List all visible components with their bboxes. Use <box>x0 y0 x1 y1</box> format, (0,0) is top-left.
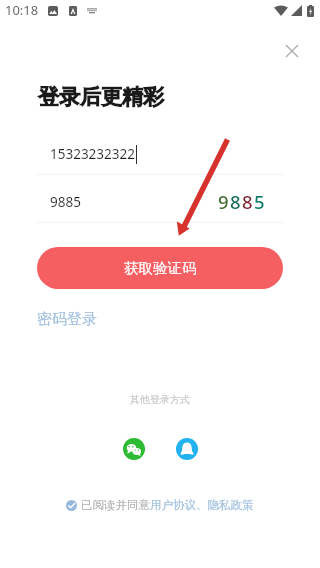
staticText: 5 <box>254 189 265 214</box>
staticText: 已阅读并同意用户协议、隐私政策 <box>81 498 254 512</box>
button[interactable]: 密码登录 <box>37 310 97 329</box>
staticText: 9 <box>218 189 229 214</box>
staticText: 获取验证码 <box>124 259 197 277</box>
staticText: 密码登录 <box>37 310 97 329</box>
button[interactable]: Refresh captcha <box>218 189 265 214</box>
button[interactable]: 获取验证码 <box>37 247 283 289</box>
staticText: 9885 <box>50 193 81 211</box>
button[interactable]: Close <box>278 37 306 65</box>
staticText: 登录后更精彩 <box>38 84 164 110</box>
staticText: 其他登录方式 <box>130 393 190 406</box>
button[interactable]: QQ login <box>176 438 198 460</box>
staticText: 8 <box>230 189 241 214</box>
staticText: 8 <box>242 189 253 214</box>
button[interactable]: WeChat login <box>123 438 145 460</box>
staticText: 15323232322 <box>50 145 135 163</box>
button[interactable]: 已阅读并同意用户协议、隐私政策 <box>0 498 320 512</box>
staticText: 10:18 <box>5 1 39 19</box>
